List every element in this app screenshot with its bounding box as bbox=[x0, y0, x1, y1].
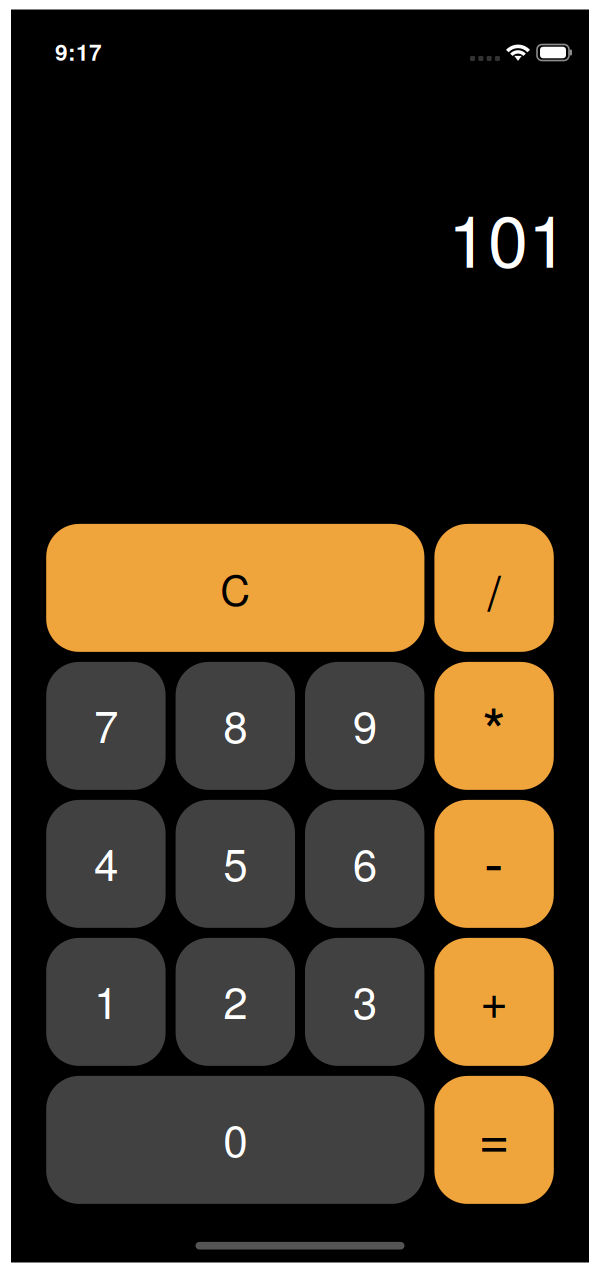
staticText: - bbox=[484, 817, 504, 901]
button[interactable]: Multiply bbox=[434, 662, 554, 790]
button[interactable]: 1 bbox=[46, 938, 166, 1066]
staticText: + bbox=[480, 963, 508, 1032]
staticText: / bbox=[488, 555, 501, 624]
button[interactable]: 4 bbox=[46, 800, 166, 928]
staticText: C bbox=[220, 558, 250, 617]
staticText: * bbox=[482, 683, 506, 771]
staticText: 101 bbox=[448, 185, 568, 288]
staticText: 6 bbox=[353, 830, 377, 893]
staticText: = bbox=[479, 1097, 510, 1173]
staticText: 0 bbox=[223, 1106, 247, 1169]
staticText: 8 bbox=[223, 692, 247, 755]
staticText: 2 bbox=[223, 968, 247, 1031]
staticText: 9 bbox=[353, 692, 377, 755]
staticText: 7 bbox=[94, 692, 118, 755]
button[interactable]: 8 bbox=[176, 662, 295, 790]
button[interactable]: 7 bbox=[46, 662, 166, 790]
button[interactable]: Divide bbox=[434, 524, 554, 652]
button[interactable]: Clear bbox=[46, 524, 424, 652]
button[interactable]: 5 bbox=[176, 800, 295, 928]
button[interactable]: Subtract bbox=[434, 800, 554, 928]
button[interactable]: 6 bbox=[305, 800, 424, 928]
button[interactable]: 9 bbox=[305, 662, 424, 790]
button[interactable]: Add bbox=[434, 938, 554, 1066]
staticText: 5 bbox=[223, 830, 247, 893]
button[interactable]: Equals bbox=[434, 1076, 554, 1204]
button[interactable]: 2 bbox=[176, 938, 295, 1066]
button[interactable]: 3 bbox=[305, 938, 424, 1066]
staticText: 1 bbox=[94, 968, 118, 1031]
staticText: 3 bbox=[353, 968, 377, 1031]
staticText: 4 bbox=[94, 830, 118, 893]
button[interactable]: 0 bbox=[46, 1076, 424, 1204]
staticText: 9:17 bbox=[55, 35, 102, 68]
